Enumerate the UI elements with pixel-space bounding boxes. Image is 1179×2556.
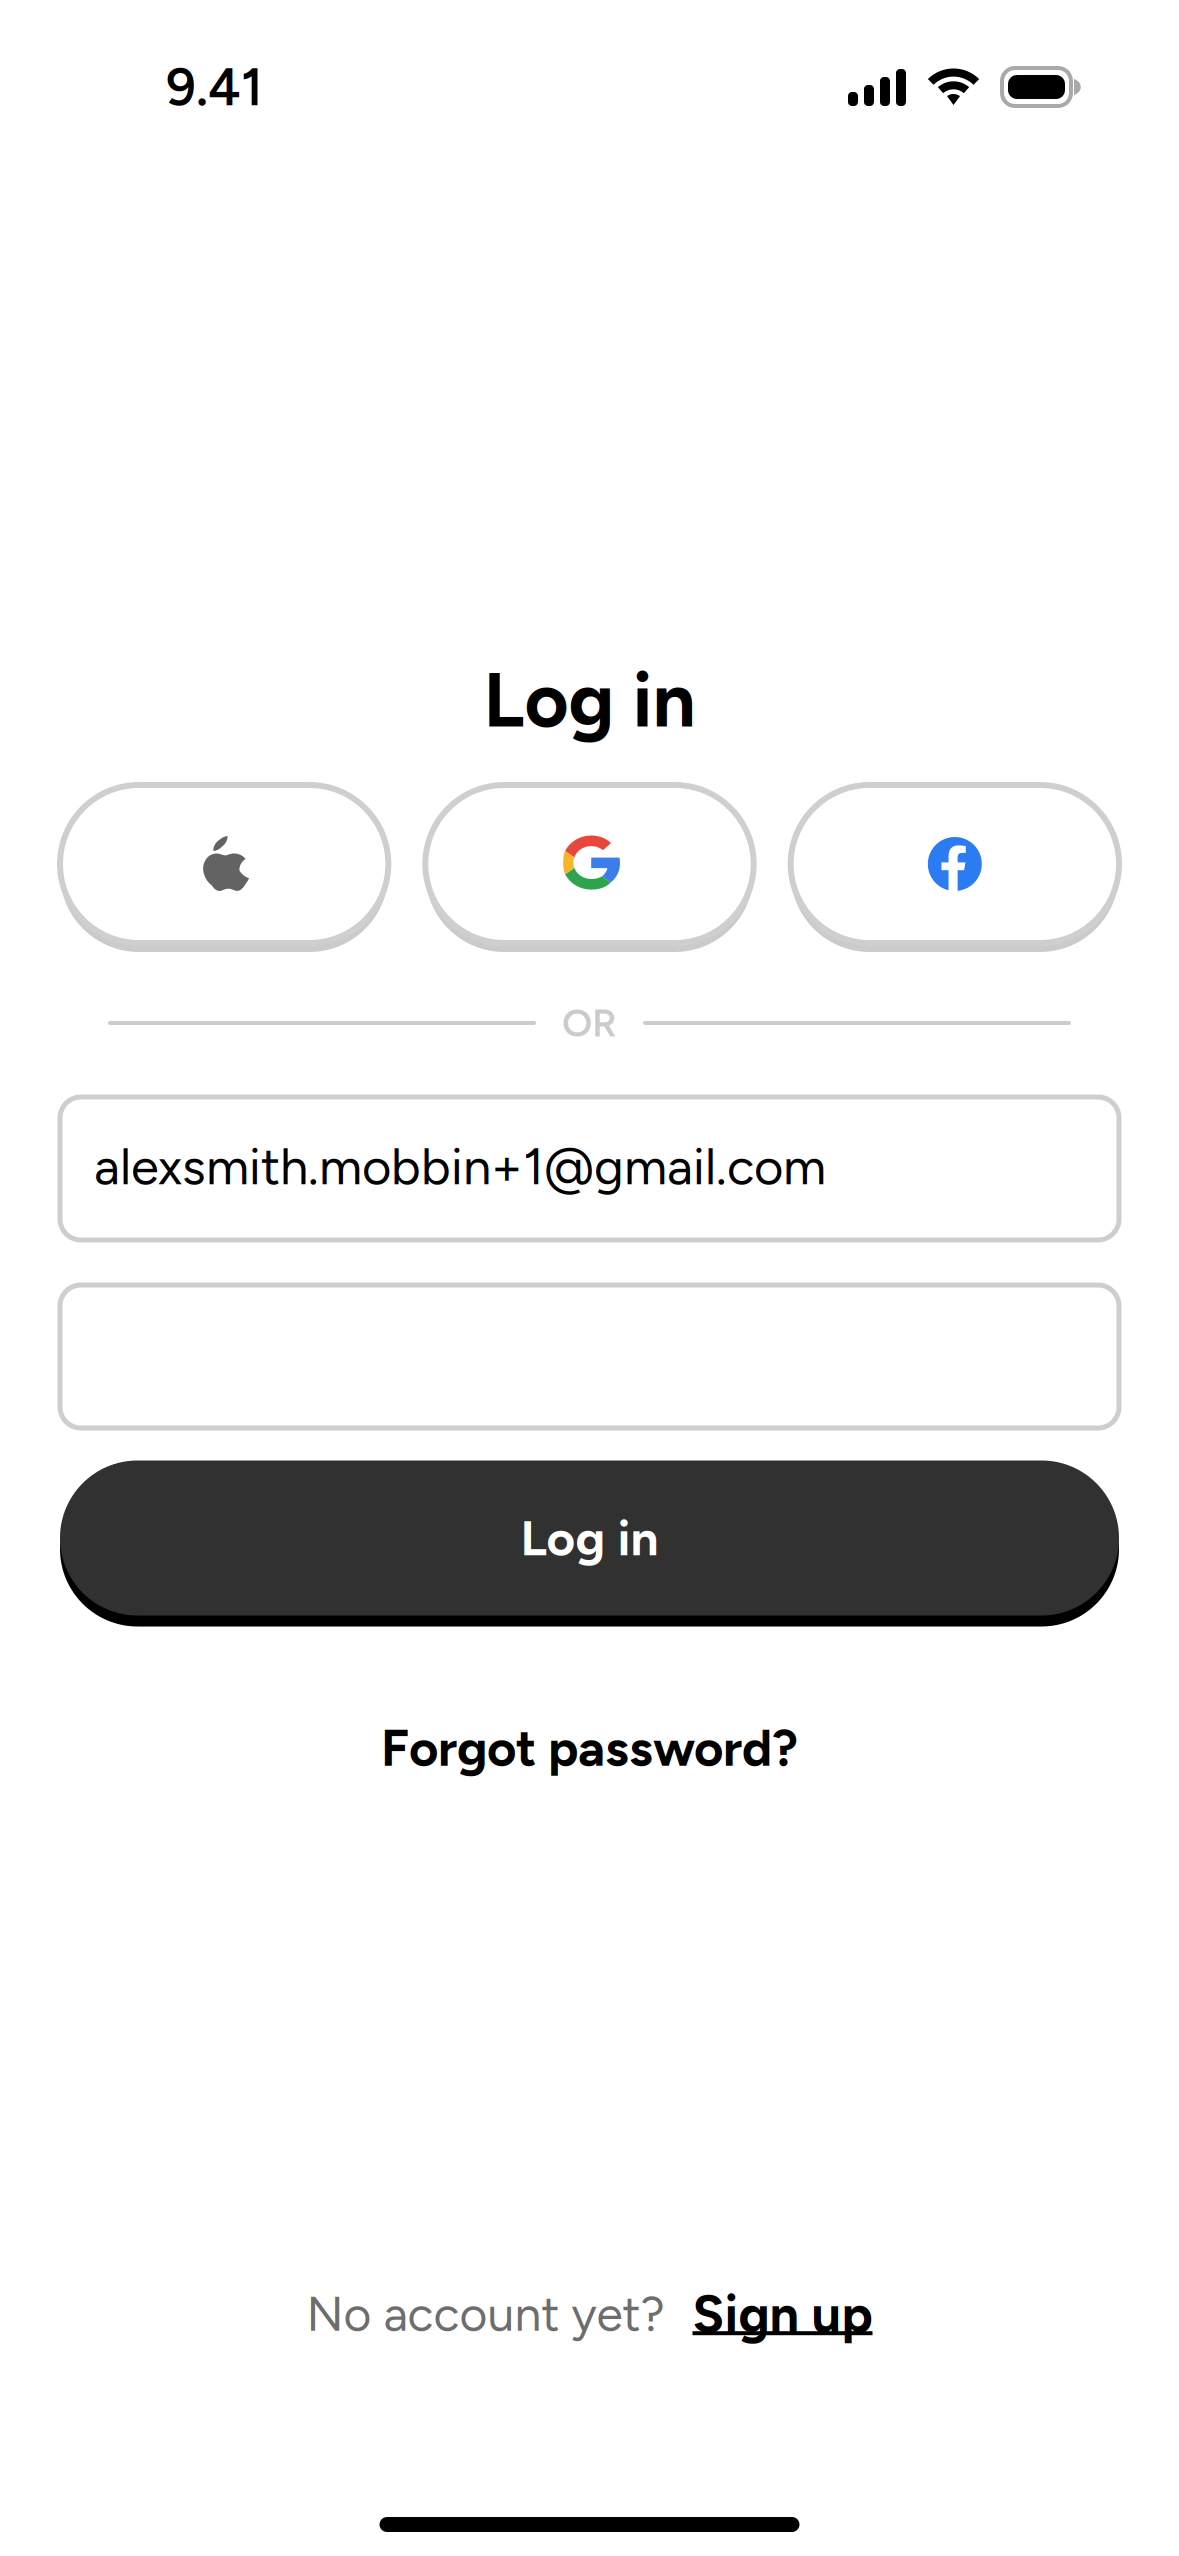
staticText: No account yet?	[306, 2285, 664, 2343]
staticText: 9.41	[166, 56, 263, 118]
staticText: Forgot password?	[381, 1718, 798, 1778]
staticText: alexsmith.mobbin+1@gmail.com	[94, 1136, 826, 1197]
button[interactable]: Continue with Apple	[60, 779, 388, 949]
staticText: Sign up	[692, 2283, 872, 2345]
button[interactable]: Log in	[60, 1455, 1119, 1621]
button[interactable]: Password	[60, 1285, 1119, 1428]
staticText: Log in	[483, 654, 695, 746]
button[interactable]: alexsmith.mobbin+1@gmail.com	[60, 1097, 1119, 1240]
button[interactable]: Continue with Google	[425, 779, 754, 949]
button[interactable]: Sign up	[692, 2283, 872, 2345]
button[interactable]: Continue with Facebook	[791, 779, 1119, 949]
button[interactable]: Forgot password?	[359, 1720, 819, 1776]
staticText: Log in	[520, 1508, 658, 1568]
staticText: OR	[562, 1000, 617, 1046]
